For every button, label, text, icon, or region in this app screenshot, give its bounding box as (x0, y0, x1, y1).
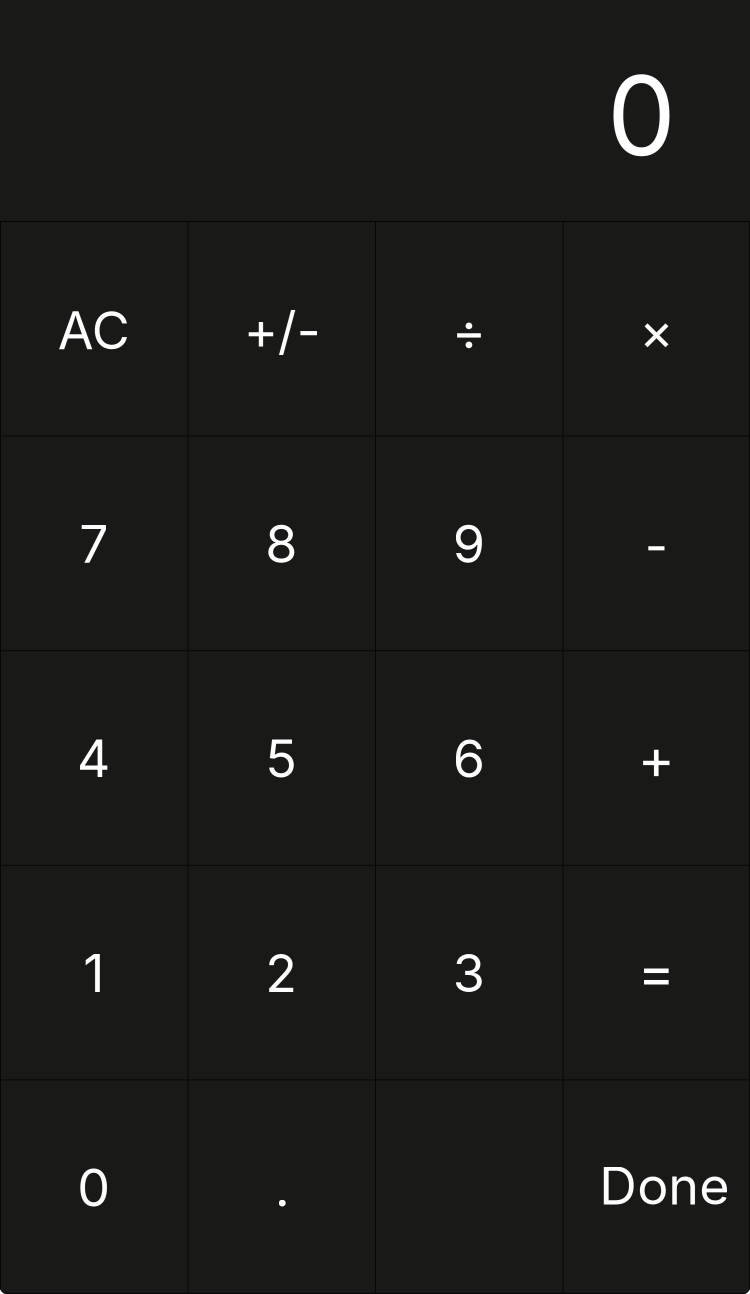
button[interactable]: 9 (375, 436, 562, 650)
staticText: 5 (265, 727, 297, 790)
staticText: AC (58, 299, 130, 362)
button[interactable]: + (562, 650, 750, 865)
staticText: 6 (453, 727, 485, 790)
staticText: 2 (265, 942, 297, 1004)
button[interactable]: Done (562, 1079, 750, 1294)
button[interactable]: . (187, 1079, 375, 1294)
button[interactable]: - (562, 436, 750, 650)
staticText: 9 (453, 512, 485, 575)
staticText: 0 (77, 1156, 110, 1219)
button[interactable]: = (562, 865, 750, 1079)
staticText: . (275, 1156, 290, 1219)
button[interactable]: ÷ (375, 221, 562, 436)
button[interactable]: 5 (187, 650, 375, 865)
button[interactable]: 0 (0, 1079, 187, 1294)
staticText: + (638, 725, 675, 792)
button[interactable]: 3 (375, 865, 562, 1079)
staticText: 1 (83, 942, 104, 1004)
button[interactable]: +/- (187, 221, 375, 436)
staticText: +/- (244, 299, 321, 362)
button[interactable]: × (562, 221, 750, 436)
staticText: × (639, 300, 673, 363)
staticText: = (638, 938, 675, 1006)
button[interactable]: AC (0, 221, 187, 436)
button[interactable]: 8 (187, 436, 375, 650)
staticText: ÷ (452, 300, 486, 363)
staticText: 3 (453, 942, 485, 1004)
staticText: 4 (77, 727, 111, 790)
button[interactable]: 6 (375, 650, 562, 865)
staticText: 0 (607, 49, 676, 182)
button[interactable]: 4 (0, 650, 187, 865)
button[interactable]: 2 (187, 865, 375, 1079)
button[interactable]: 7 (0, 436, 187, 650)
staticText: 7 (79, 512, 108, 575)
staticText: Done (599, 1154, 729, 1217)
button[interactable]: 1 (0, 865, 187, 1079)
staticText: 8 (265, 512, 297, 575)
staticText: - (645, 515, 668, 576)
